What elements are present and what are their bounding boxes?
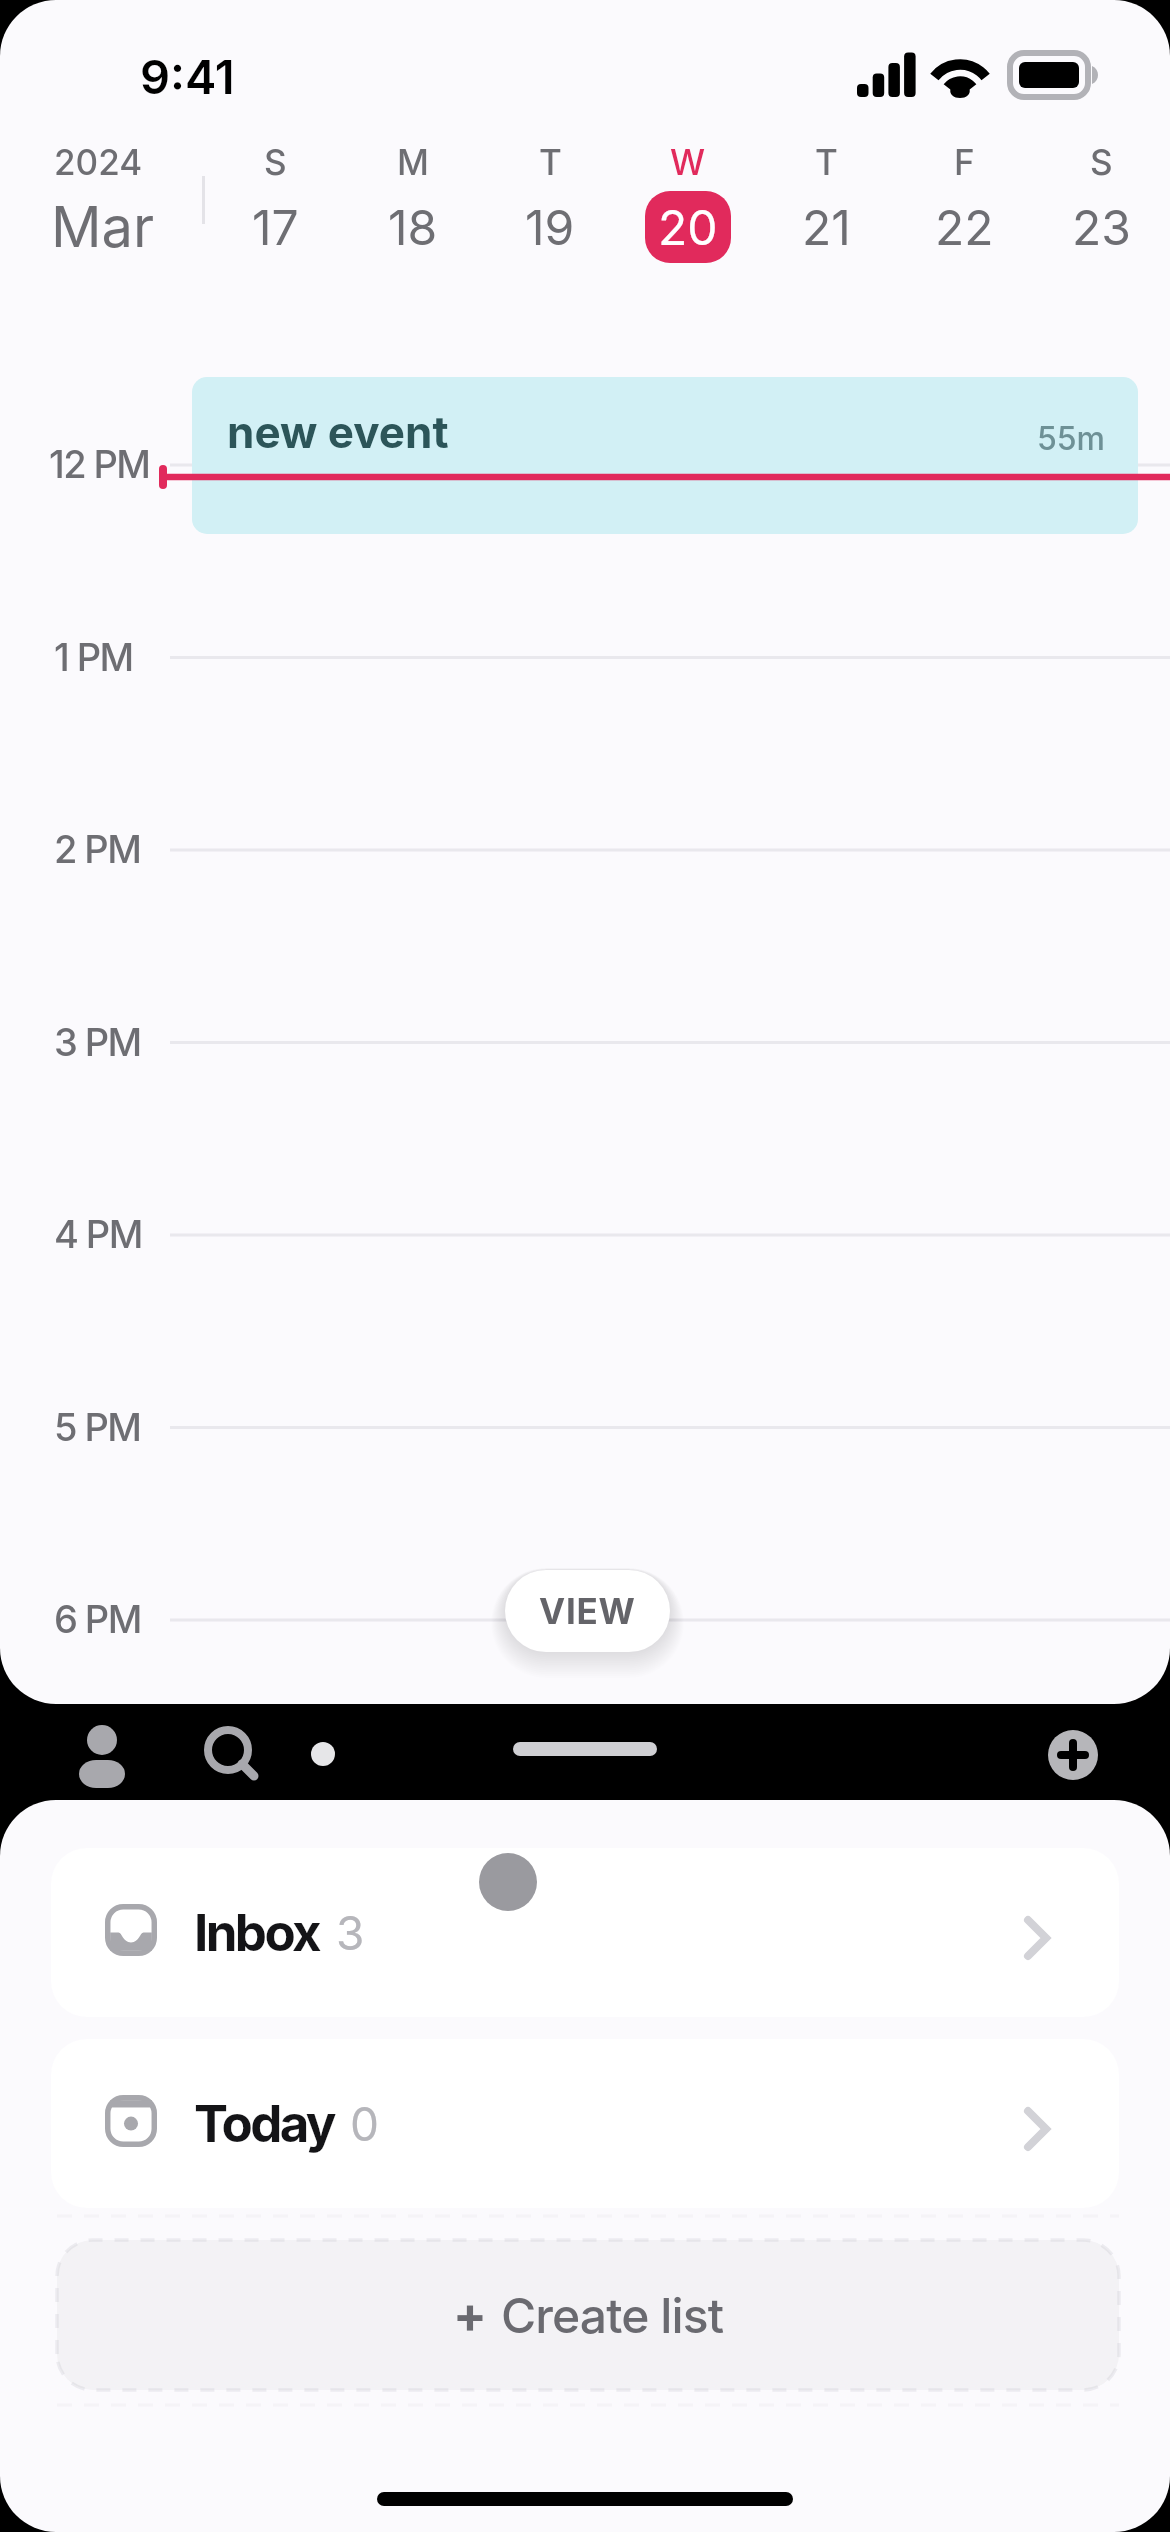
button[interactable]: Search <box>192 1714 272 1794</box>
button[interactable]: VIEW <box>505 1570 670 1652</box>
staticText: S <box>1090 141 1113 183</box>
staticText: Create list <box>501 2286 724 2344</box>
button[interactable]: T <box>757 130 895 280</box>
button[interactable]: W <box>619 130 757 280</box>
staticText: 1 PM <box>54 634 133 680</box>
staticText: 3 <box>336 1905 365 1961</box>
staticText: 23 <box>1072 198 1131 256</box>
staticText: 3 PM <box>54 1019 141 1065</box>
button[interactable]: T <box>481 130 619 280</box>
staticText: VIEW <box>539 1590 636 1632</box>
button[interactable]: S <box>206 130 344 280</box>
button[interactable]: M <box>344 130 482 280</box>
staticText: 18 <box>388 198 438 256</box>
staticText: 19 <box>525 198 575 256</box>
button[interactable]: Today <box>51 2039 1119 2208</box>
staticText: 6 PM <box>54 1596 141 1642</box>
button[interactable]: Profile <box>62 1714 142 1794</box>
staticText: Inbox <box>194 1902 320 1964</box>
staticText: 21 <box>802 198 851 256</box>
staticText: 22 <box>935 198 994 256</box>
button[interactable]: Add <box>1048 1730 1098 1780</box>
staticText: Mar <box>51 193 155 261</box>
button[interactable]: new event <box>192 377 1138 534</box>
staticText: 0 <box>350 2096 380 2152</box>
staticText: 9:41 <box>140 48 235 105</box>
staticText: 2 PM <box>54 826 141 872</box>
staticText: new event <box>227 405 449 458</box>
button[interactable]: S <box>1032 130 1170 280</box>
button[interactable]: Inbox <box>51 1848 1119 2017</box>
staticText: 20 <box>658 198 718 256</box>
staticText: W <box>670 141 706 183</box>
staticText: T <box>815 141 838 183</box>
staticText: 12 PM <box>49 441 150 487</box>
button[interactable]: More <box>305 1736 341 1772</box>
staticText: T <box>539 141 562 183</box>
staticText: 17 <box>252 198 299 256</box>
staticText: S <box>264 141 287 183</box>
staticText: Today <box>194 2093 334 2155</box>
staticText: F <box>954 141 975 183</box>
staticText: 5 PM <box>54 1404 141 1450</box>
staticText: 2024 <box>54 141 143 183</box>
staticText: + <box>453 2285 487 2345</box>
button[interactable]: + <box>57 2240 1119 2390</box>
staticText: M <box>397 141 429 183</box>
button[interactable]: F <box>895 130 1033 280</box>
staticText: 55m <box>1037 419 1105 458</box>
staticText: 4 PM <box>54 1211 142 1257</box>
